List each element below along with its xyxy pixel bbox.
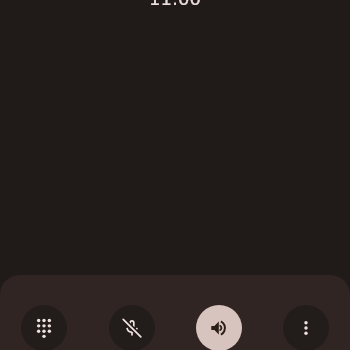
- staticText: 11:00: [149, 0, 201, 9]
- button[interactable]: More options: [283, 305, 329, 350]
- button[interactable]: Dialpad: [21, 305, 67, 350]
- button[interactable]: Mute: [109, 305, 155, 350]
- button[interactable]: Speaker: [196, 305, 242, 350]
